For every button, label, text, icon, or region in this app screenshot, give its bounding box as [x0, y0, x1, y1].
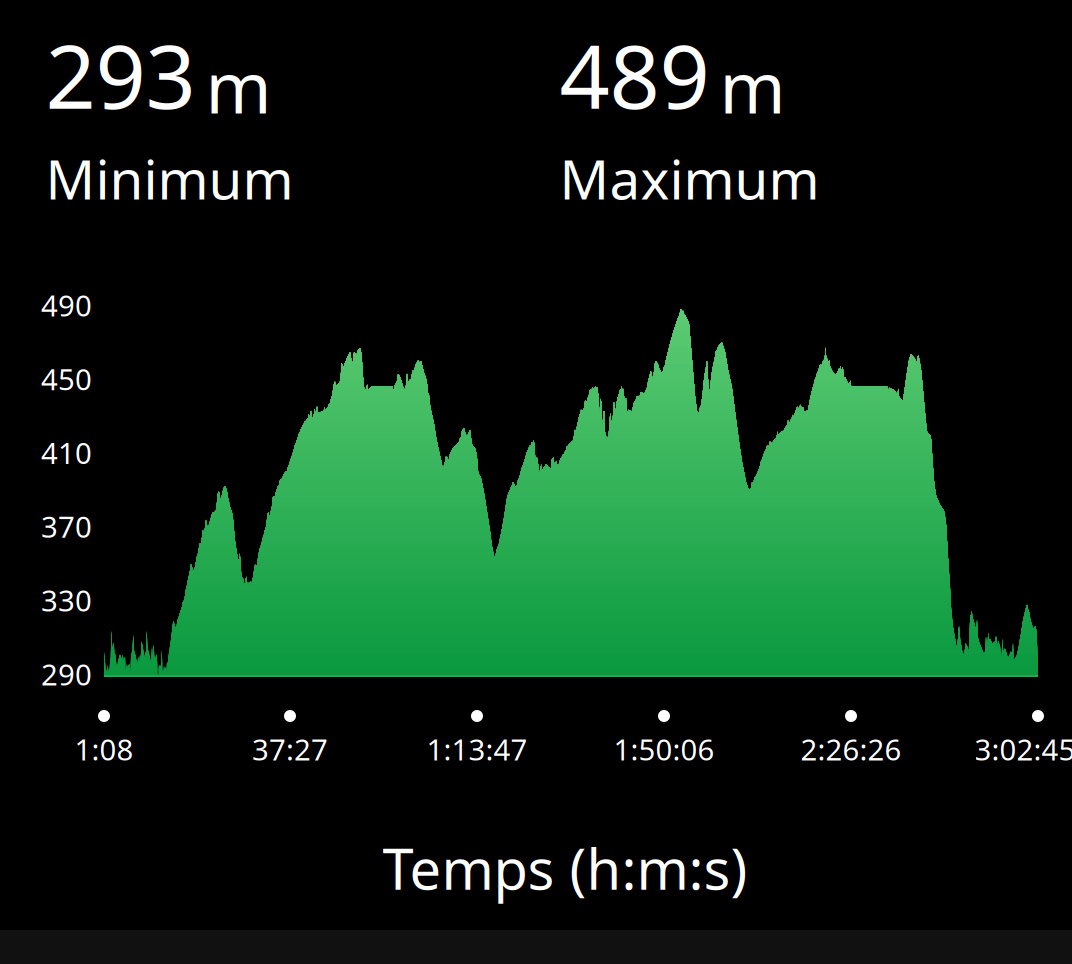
staticText: 1:08 [74, 729, 133, 768]
staticText: 1:50:06 [613, 729, 714, 768]
staticText: 410 [41, 433, 92, 472]
button[interactable]: Elevation profile chart [104, 306, 1039, 677]
staticText: Temps (h:m:s) [382, 831, 747, 905]
staticText: 37:27 [252, 729, 328, 768]
staticText: m [205, 39, 271, 133]
staticText: 293 [45, 16, 195, 133]
staticText: Minimum [45, 142, 293, 215]
staticText: 370 [41, 507, 92, 546]
button[interactable]: 489 [559, 25, 1029, 210]
staticText: 490 [41, 285, 92, 324]
staticText: Maximum [559, 142, 819, 215]
staticText: m [719, 39, 785, 133]
staticText: 450 [41, 359, 92, 398]
staticText: 290 [41, 654, 92, 693]
button[interactable]: 293 [45, 25, 515, 210]
staticText: 2:26:26 [800, 729, 901, 768]
staticText: 489 [559, 16, 709, 133]
staticText: 3:02:45 [974, 729, 1072, 768]
staticText: 330 [41, 581, 92, 620]
staticText: 1:13:47 [426, 729, 527, 768]
